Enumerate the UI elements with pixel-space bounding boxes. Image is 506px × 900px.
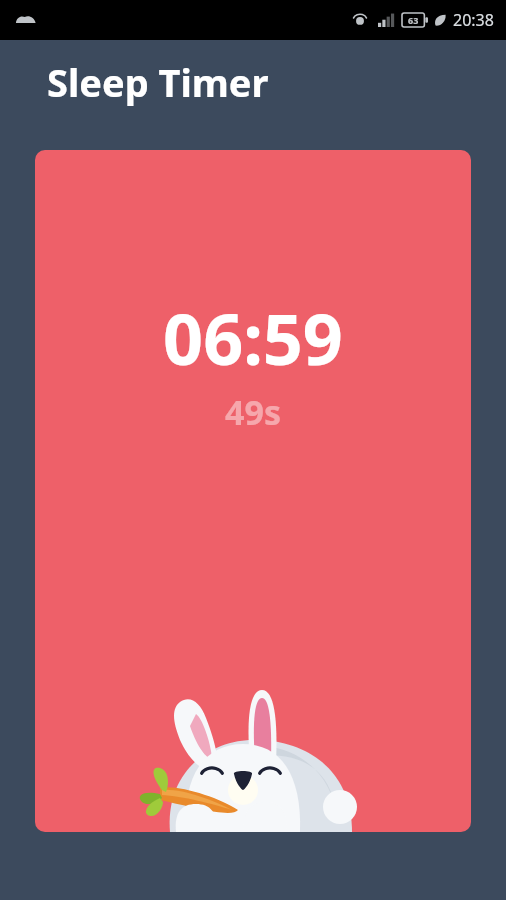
staticText: Sleep Timer [47,56,269,108]
staticText: 06:59 [163,290,343,385]
staticText: 63 [408,14,419,26]
staticText: 20:38 [453,9,494,31]
button[interactable]: 06:59 [35,150,471,832]
staticText: 49s [225,389,281,435]
